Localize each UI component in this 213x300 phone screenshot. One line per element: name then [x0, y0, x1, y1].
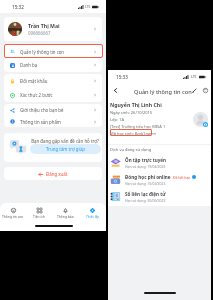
staticText: Sổ liên lạc điện tử — [125, 191, 166, 197]
staticText: Đăng xuất — [46, 171, 68, 177]
staticText: Giới thiệu cho bạn bè — [20, 107, 64, 113]
button[interactable]: Quản lý thông tin con — [4, 45, 102, 58]
staticText: Tiện ích — [33, 214, 45, 218]
button[interactable]: Xác thực 2 bước — [4, 88, 102, 102]
staticText: Quản lý thông tin con — [134, 88, 192, 96]
staticText: Đổi mật khẩu — [20, 78, 48, 84]
staticText: Trần Thị Mai — [28, 22, 60, 29]
button[interactable]: Đổi mật khẩu — [4, 74, 102, 88]
button[interactable]: Đăng xuất — [4, 167, 102, 180]
staticText: Nguyễn Thị Linh Chi — [110, 101, 162, 108]
button[interactable]: Change photo — [203, 122, 208, 127]
button[interactable]: Edit — [190, 84, 199, 97]
staticText: 096666667 — [28, 30, 51, 36]
staticText: Đã hết hạn — [173, 175, 191, 180]
staticText: Thông báo — [57, 214, 74, 218]
button[interactable]: Giới thiệu cho bạn bè — [4, 104, 102, 116]
button[interactable]: Danh bạ — [4, 58, 102, 72]
staticText: Lớp: 1A — [110, 117, 124, 122]
staticText: 15:33 — [116, 74, 128, 80]
staticText: Dịch vụ đang sử dụng — [110, 147, 152, 152]
staticText: Đóng học phí online — [125, 174, 171, 180]
staticText: Thiết lập — [86, 214, 100, 218]
button[interactable]: Thông tin con — [0, 203, 26, 222]
staticText: [Test] Trường tiểu học MISA 1 — [110, 124, 166, 129]
staticText: Ngày sinh: 26/10/2015 — [110, 110, 153, 115]
staticText: Quản lý thông tin con — [20, 49, 65, 55]
staticText: Thông tin con — [2, 214, 24, 218]
staticText: Hạn sử dụng: 15/02/2023 — [125, 181, 166, 186]
staticText: Hạn sử dụng: 30/06/2023 — [125, 198, 166, 203]
staticText: Xác thực 2 bước — [20, 92, 53, 98]
button[interactable]: Thông tin sản phẩm — [4, 116, 102, 127]
button[interactable]: Sổ liên lạc điện tử — [108, 188, 211, 205]
staticText: Hạn sử dụng: 19/04/2025 — [125, 164, 166, 169]
staticText: LTE — [191, 74, 197, 79]
staticText: Danh bạ — [20, 62, 38, 68]
button[interactable]: Help — [201, 84, 210, 97]
staticText: 15:32 — [12, 4, 24, 10]
staticText: Bạn đang gặp vấn đề cần hỗ trợ? — [31, 138, 99, 144]
staticText: Trung tâm trợ giúp — [46, 146, 86, 152]
staticText: Ôn tập trực tuyến — [125, 157, 167, 163]
button[interactable]: Thiết lập — [79, 203, 106, 222]
button[interactable]: Tiện ích — [26, 203, 52, 222]
button[interactable]: Back — [110, 84, 120, 97]
button[interactable]: Thông báo — [52, 203, 79, 222]
staticText: Mã học sinh: 8zvk1nwnn — [110, 131, 156, 136]
button[interactable]: Ôn tập trực tuyến — [108, 154, 211, 171]
button[interactable]: Trung tâm trợ giúp — [30, 144, 101, 154]
button[interactable]: Đóng học phí online — [108, 171, 211, 188]
staticText: LTE — [85, 4, 91, 9]
button[interactable]: Trần Thị Mai — [4, 17, 102, 41]
staticText: Thông tin sản phẩm — [20, 119, 61, 125]
